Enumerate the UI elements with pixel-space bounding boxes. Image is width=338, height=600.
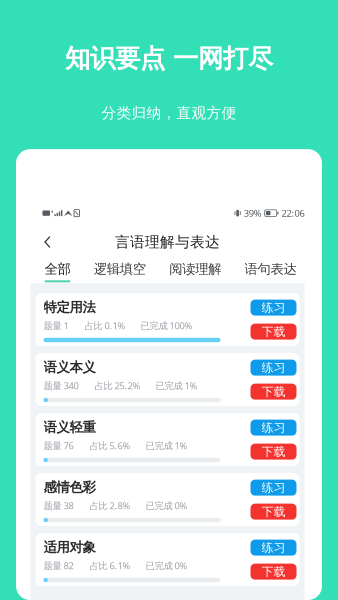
button[interactable]: 全部	[44, 261, 70, 282]
staticText: 言语理解与表达	[115, 233, 220, 251]
staticText: 占比 0.1%	[84, 319, 125, 332]
button[interactable]: 感情色彩	[35, 473, 299, 526]
staticText: 阅读理解	[169, 261, 221, 277]
staticText: 语句表达	[244, 261, 296, 277]
staticText: 下载	[261, 384, 285, 399]
staticText: 题量 1	[43, 319, 68, 332]
button[interactable]: 语句表达	[244, 261, 296, 282]
button[interactable]: 下载	[250, 564, 296, 580]
staticText: 练习	[261, 480, 285, 495]
staticText: 已完成 0%	[145, 499, 187, 512]
staticText: 下载	[261, 324, 285, 339]
staticText: 题量 38	[43, 499, 73, 512]
button[interactable]: 逻辑填空	[94, 261, 146, 282]
staticText: 适用对象	[43, 539, 95, 555]
staticText: 全部	[44, 261, 70, 277]
staticText: 练习	[261, 540, 285, 555]
staticText: 感情色彩	[43, 479, 95, 495]
staticText: 下载	[261, 504, 285, 519]
staticText: 特定用法	[43, 299, 95, 315]
staticText: 练习	[261, 300, 285, 315]
staticText: 占比 6.1%	[89, 559, 130, 572]
staticText: 占比 2.8%	[89, 499, 130, 512]
staticText: 下载	[261, 444, 285, 459]
staticText: 分类归纳，直观方便	[101, 104, 236, 122]
staticText: 已完成 100%	[140, 319, 192, 332]
button[interactable]: 适用对象	[35, 533, 299, 586]
staticText: 练习	[261, 420, 285, 435]
staticText: 逻辑填空	[94, 261, 146, 277]
button[interactable]: 下载	[250, 504, 296, 520]
staticText: 占比 5.6%	[89, 439, 130, 452]
staticText: 题量 82	[43, 559, 73, 572]
button[interactable]: 返回	[32, 228, 62, 256]
button[interactable]: 练习	[250, 480, 296, 496]
button[interactable]: 下载	[250, 384, 296, 400]
button[interactable]: 阅读理解	[169, 261, 221, 282]
button[interactable]: 特定用法	[35, 293, 299, 346]
staticText: 占比 25.2%	[94, 379, 140, 392]
button[interactable]: 下载	[250, 324, 296, 340]
staticText: 已完成 1%	[155, 379, 197, 392]
staticText: 已完成 0%	[145, 559, 187, 572]
staticText: 22:06	[281, 207, 304, 219]
button[interactable]: 练习	[250, 540, 296, 556]
staticText: 下载	[261, 564, 285, 579]
button[interactable]: 练习	[250, 420, 296, 436]
staticText: 题量 76	[43, 439, 73, 452]
staticText: 39%	[244, 207, 262, 219]
staticText: 知识要点 一网打尽	[65, 43, 273, 74]
button[interactable]: 语义本义	[35, 353, 299, 406]
button[interactable]: 下载	[250, 444, 296, 460]
button[interactable]: 练习	[250, 300, 296, 316]
staticText: 语义本义	[43, 359, 95, 375]
button[interactable]: 练习	[250, 360, 296, 376]
button[interactable]: 语义轻重	[35, 413, 299, 466]
staticText: 练习	[261, 360, 285, 375]
staticText: 语义轻重	[43, 419, 95, 435]
staticText: 已完成 1%	[145, 439, 187, 452]
staticText: 题量 340	[43, 379, 78, 392]
